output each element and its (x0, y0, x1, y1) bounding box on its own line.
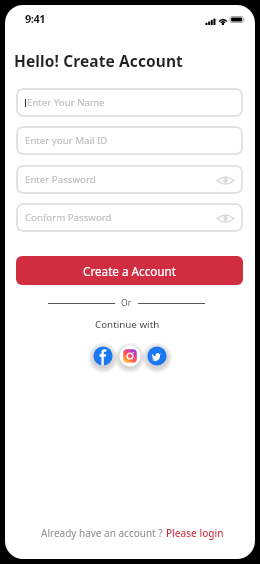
button[interactable]: Toggle password visibility (216, 209, 234, 227)
button[interactable]: Continue with Facebook (92, 345, 114, 367)
button[interactable]: Enter Password (16, 165, 243, 194)
button[interactable]: Continue with Twitter (146, 345, 168, 367)
staticText: Enter your Mail ID (25, 134, 108, 147)
staticText: Or (121, 297, 132, 309)
button[interactable]: Toggle password visibility (216, 171, 234, 189)
staticText: 9:41 (25, 11, 46, 26)
staticText: Already have an account ? (41, 526, 163, 540)
button[interactable]: Create a Account (16, 256, 243, 285)
staticText: Please login (166, 526, 224, 540)
button[interactable]: Conform Password (16, 203, 243, 232)
staticText: Enter Password (25, 173, 96, 186)
button[interactable]: Enter your Mail ID (16, 126, 243, 155)
button[interactable]: Enter Your Name (16, 88, 243, 117)
button[interactable]: Please login (166, 526, 224, 540)
staticText: Conform Password (25, 211, 112, 224)
staticText: Continue with (95, 318, 160, 331)
button[interactable]: Continue with Instagram (119, 345, 141, 367)
staticText: Enter Your Name (27, 96, 105, 109)
staticText: Hello! Create Account (14, 50, 183, 71)
staticText: Create a Account (83, 263, 176, 279)
